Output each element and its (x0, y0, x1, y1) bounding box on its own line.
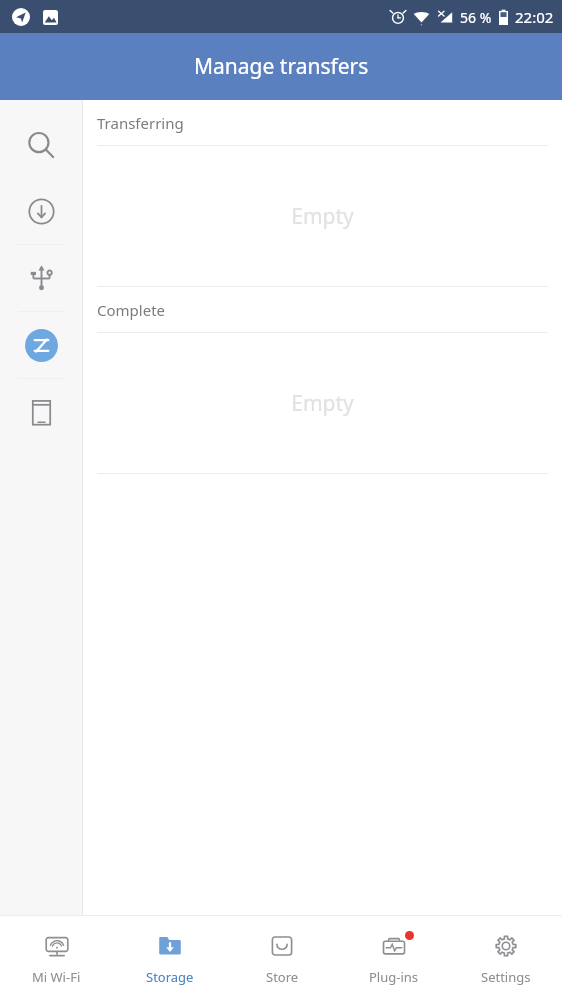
staticText: Transferring (97, 113, 184, 133)
staticText: Mi Wi-Fi (32, 968, 81, 986)
button[interactable]: Transfers (0, 312, 82, 378)
button[interactable]: Downloads (0, 178, 82, 244)
staticText: Complete (97, 300, 166, 320)
button[interactable]: Settings (450, 916, 562, 1000)
button[interactable]: Storage (113, 916, 226, 1000)
button[interactable]: Device (0, 379, 82, 445)
button[interactable]: Mi Wi-Fi (0, 916, 113, 1000)
staticText: Storage (146, 968, 194, 986)
button[interactable]: Plug-ins (338, 916, 450, 1000)
button[interactable]: Search (0, 112, 82, 178)
staticText: Empty (291, 389, 354, 418)
staticText: 22:02 (515, 7, 554, 27)
staticText: 56 % (460, 8, 492, 27)
staticText: Settings (481, 968, 531, 986)
staticText: Empty (291, 202, 354, 231)
staticText: Manage transfers (194, 52, 369, 81)
button[interactable]: USB (0, 245, 82, 311)
staticText: Store (266, 968, 299, 986)
button[interactable]: Store (226, 916, 338, 1000)
staticText: Plug-ins (369, 968, 419, 986)
